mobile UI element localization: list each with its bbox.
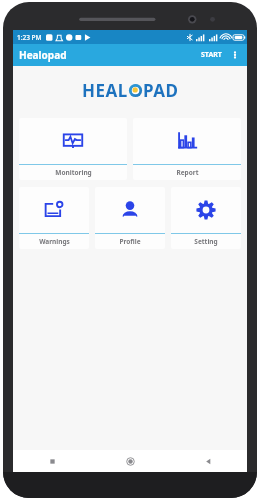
staticText: Warnings: [39, 237, 70, 246]
button[interactable]: START: [198, 48, 225, 62]
staticText: Monitoring: [55, 168, 92, 177]
staticText: Profile: [119, 237, 141, 246]
button[interactable]: Back: [169, 450, 247, 472]
staticText: PAD: [143, 79, 179, 102]
staticText: START: [201, 50, 222, 60]
staticText: Healopad: [19, 48, 67, 62]
button[interactable]: Monitoring: [19, 118, 127, 180]
button[interactable]: Setting: [171, 187, 241, 249]
staticText: Setting: [194, 237, 218, 246]
button[interactable]: More options: [227, 47, 243, 63]
button[interactable]: Profile: [95, 187, 165, 249]
staticText: Report: [176, 168, 199, 177]
button[interactable]: Warnings: [19, 187, 89, 249]
staticText: HEAL: [82, 79, 128, 102]
button[interactable]: Home: [91, 450, 169, 472]
button[interactable]: Recent apps: [13, 450, 91, 472]
button[interactable]: Report: [133, 118, 241, 180]
staticText: 1:23 PM: [17, 33, 42, 42]
